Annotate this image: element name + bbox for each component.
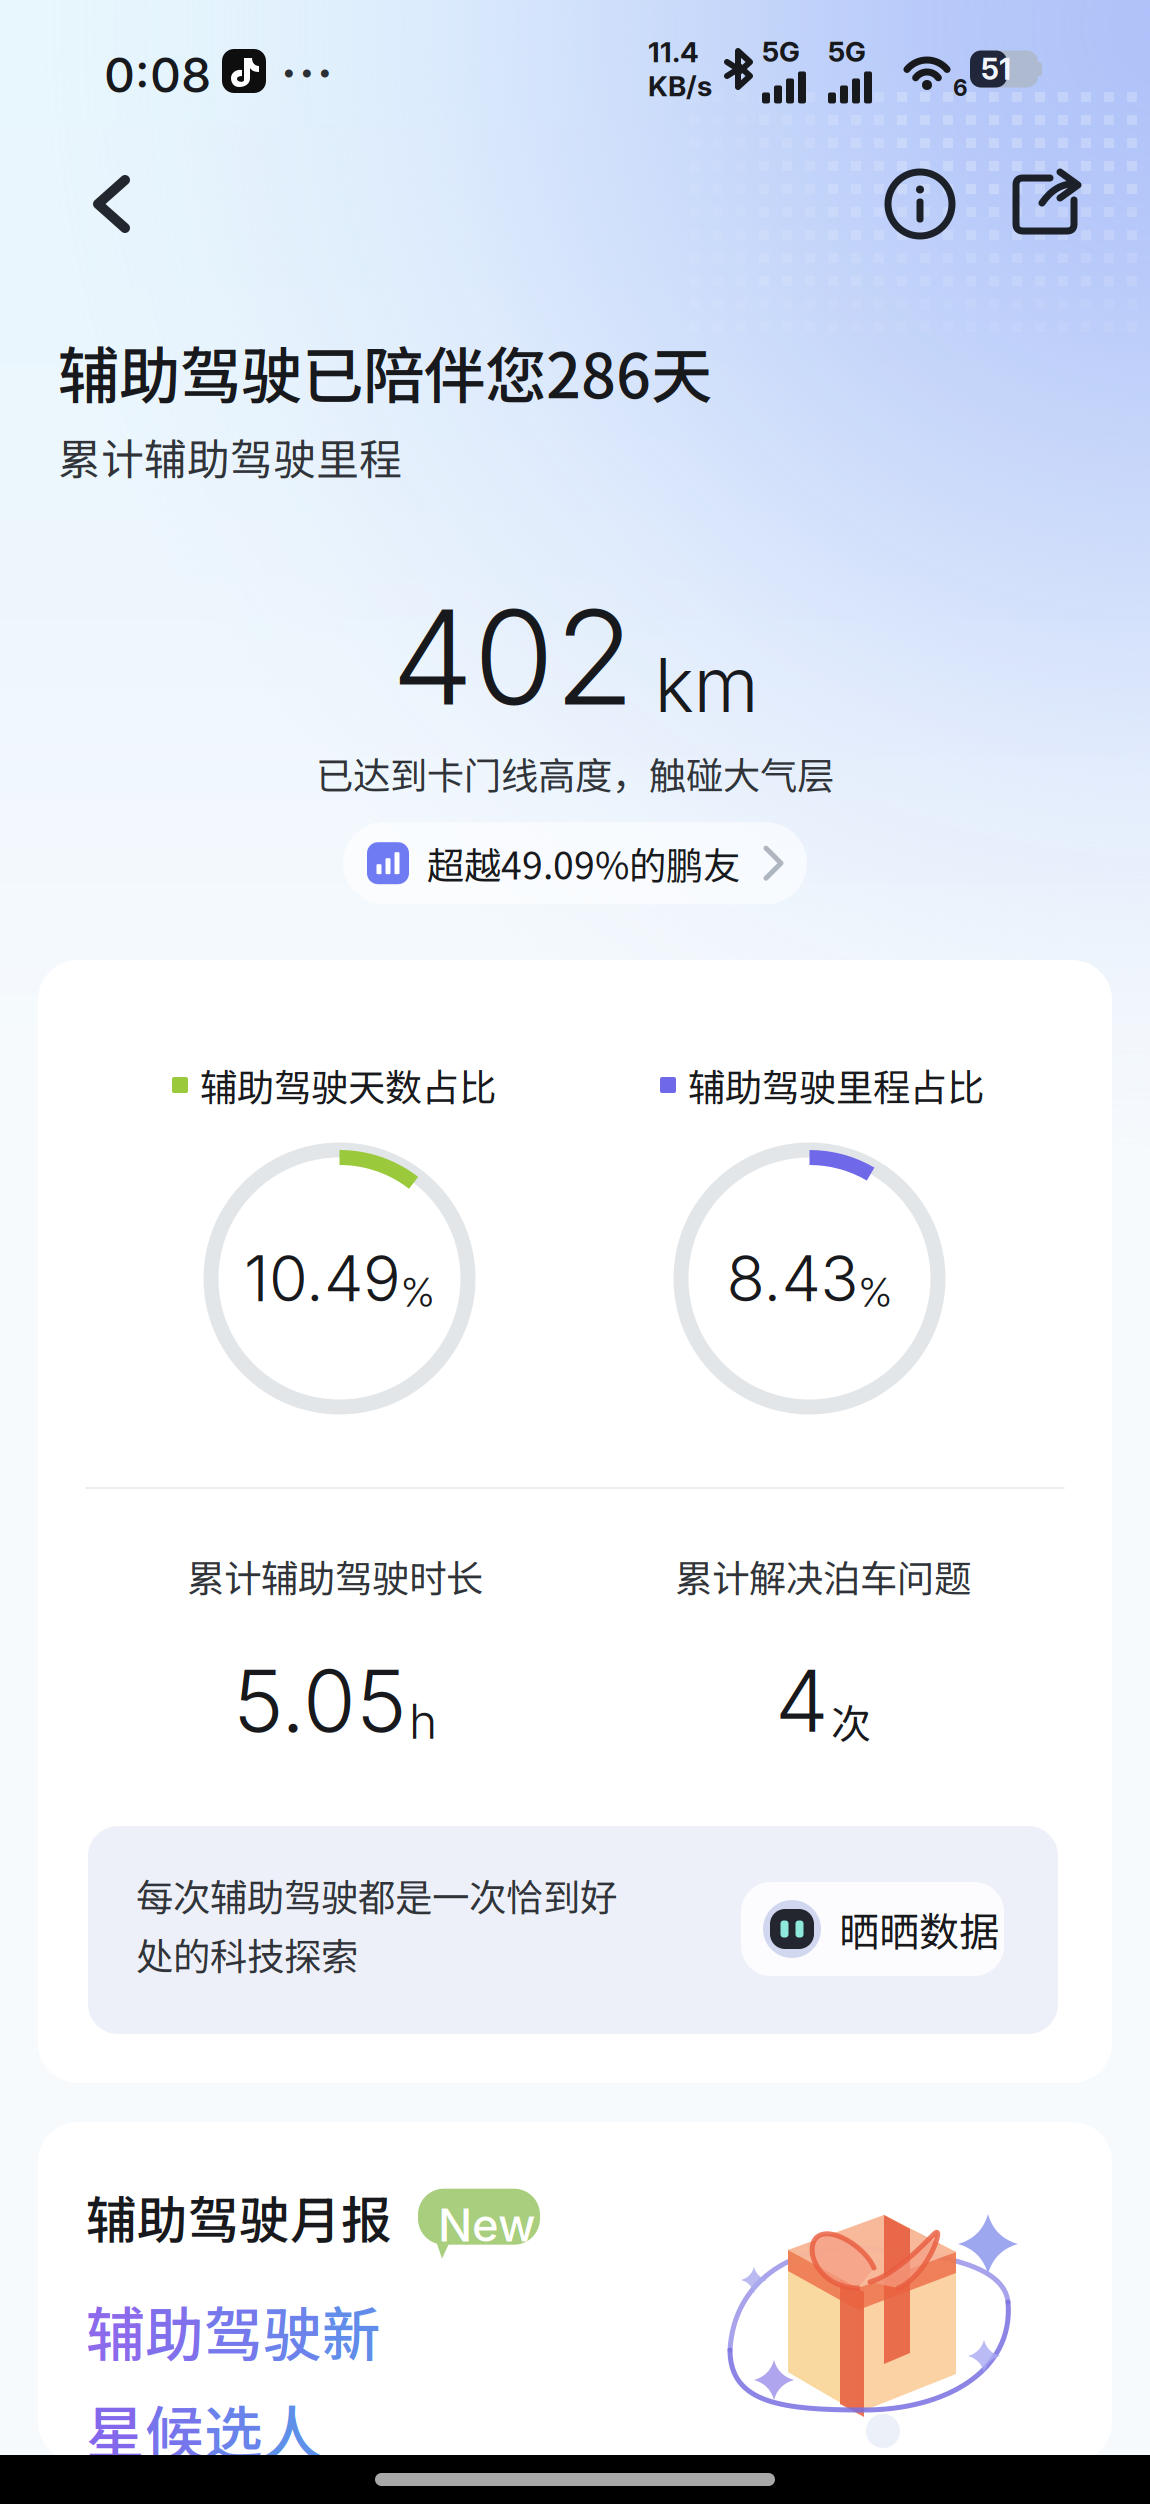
staticText: 辅助驾驶已陪伴您286天 [58,327,712,416]
staticText: 晒晒数据 [839,1900,999,1958]
staticText: 超越49.09%的鹏友 [427,836,740,890]
button[interactable]: Share [994,154,1098,254]
staticText: 10.49 [244,1241,401,1316]
staticText: 51 [981,51,1011,87]
staticText: 402 [391,578,634,736]
staticText: 累计辅助驾驶里程 [58,426,402,488]
staticText: 每次辅助驾驶都是一次恰到好 [136,1868,617,1922]
staticText: 5G [762,35,800,68]
staticText: 辅助驾驶月报 [86,2180,392,2253]
button[interactable]: Info [870,154,970,254]
staticText: 次 [831,1692,871,1750]
staticText: 5G [828,35,866,68]
staticText: 辅助驾驶天数占比 [200,1058,496,1112]
staticText: % [401,1268,435,1316]
staticText: New [438,2198,536,2253]
staticText: 助 [145,2288,204,2373]
staticText: 驾 [204,2288,263,2373]
staticText: 处的科技探索 [136,1927,358,1981]
staticText: 驶 [263,2288,322,2373]
staticText: 人 [263,2387,322,2472]
staticText: 累计辅助驾驶时长 [187,1549,483,1603]
staticText: % [858,1268,892,1316]
staticText: 候 [145,2387,204,2472]
staticText: 6 [953,74,968,101]
staticText: h [409,1692,437,1750]
staticText: 星 [86,2387,145,2472]
staticText: km [654,640,758,730]
staticText: 5.05 [233,1649,407,1752]
staticText: 辅 [86,2288,145,2373]
staticText: 累计解决泊车问题 [675,1549,971,1603]
staticText: 8.43 [726,1241,858,1316]
staticText: • • • [283,56,331,87]
staticText: 4 [775,1649,829,1752]
staticText: 11.4 [648,35,699,69]
staticText: 辅助驾驶里程占比 [688,1058,984,1112]
button[interactable]: 晒晒数据 [741,1882,1004,1976]
staticText: 新 [322,2288,381,2373]
staticText: KB/s [648,69,712,103]
staticText: 已达到卡门线高度，触碰大气层 [316,746,834,800]
button[interactable]: Back [71,155,153,253]
button[interactable]: 超越49.09%的鹏友 [343,822,807,904]
staticText: 选 [204,2387,263,2472]
staticText: 0:08 [104,46,211,104]
